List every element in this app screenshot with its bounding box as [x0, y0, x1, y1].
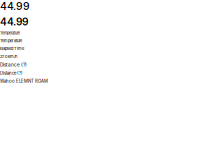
staticText: Temperature	[0, 38, 22, 43]
staticText: Temperature	[0, 31, 20, 35]
staticText: Wahoo ELEMNT ROAM	[0, 79, 48, 84]
staticText: 44.99	[0, 0, 30, 13]
staticText: Elapsed Time	[0, 46, 24, 51]
staticText: Distance (?)	[0, 70, 23, 76]
staticText: 27.0km/h	[0, 54, 17, 59]
staticText: 44.99	[0, 16, 28, 28]
staticText: Distance (?)	[0, 62, 27, 67]
